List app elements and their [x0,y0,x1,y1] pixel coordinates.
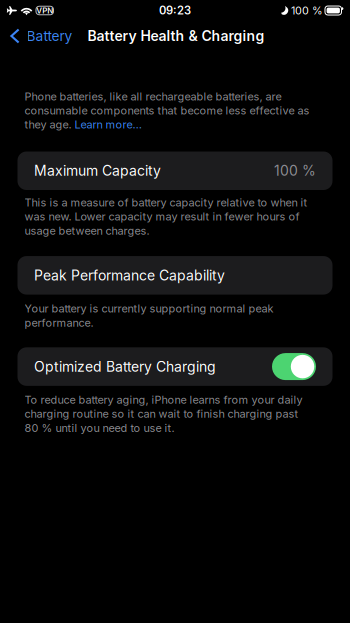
staticText: Peak Performance Capability [34,267,225,284]
staticText: Your battery is currently supporting nor… [24,302,273,329]
staticText: To reduce battery aging, iPhone learns f… [24,393,302,435]
staticText: Battery Health & Charging [87,27,264,44]
staticText: Phone batteries, like all rechargeable b… [24,90,281,103]
staticText: Optimized Battery Charging [34,358,216,375]
staticText: VPN [36,6,53,15]
staticText: This is a measure of battery capacity re… [24,196,307,237]
staticText: they age. [24,118,74,131]
staticText: Learn more… [74,118,141,131]
staticText: consumable components that become less e… [24,104,309,117]
button[interactable]: Optimized Battery Charging [0,347,332,386]
staticText: 09:23 [159,4,191,17]
button[interactable]: Learn more… [74,118,141,131]
button[interactable]: Maximum Capacity [0,151,332,190]
staticText: 100 % [291,4,323,17]
button[interactable]: Battery [0,24,78,48]
staticText: 100 % [274,162,316,179]
staticText: Maximum Capacity [34,162,161,179]
button[interactable]: Peak Performance Capability [0,256,332,295]
staticText: Battery [26,28,72,44]
